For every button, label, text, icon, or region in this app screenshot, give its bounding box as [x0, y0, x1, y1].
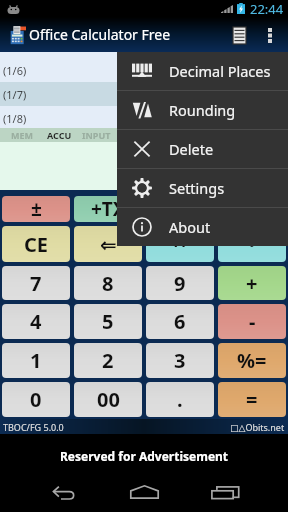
- button[interactable]: Tape: [222, 18, 256, 52]
- button[interactable]: [146, 196, 214, 222]
- staticText: Rounding: [169, 100, 236, 120]
- button[interactable]: 8: [74, 266, 142, 300]
- staticText: 0: [30, 386, 42, 413]
- button[interactable]: Decimal Places: [117, 52, 288, 90]
- button[interactable]: 3: [146, 343, 214, 378]
- staticText: 00: [97, 386, 120, 413]
- button[interactable]: +: [218, 266, 286, 300]
- button[interactable]: Home: [117, 470, 171, 512]
- staticText: ·: [249, 231, 255, 258]
- staticText: ±: [31, 196, 42, 222]
- button[interactable]: Rounding: [117, 91, 288, 129]
- button[interactable]: -: [218, 304, 286, 339]
- staticText: 8: [102, 270, 114, 297]
- staticText: RESULT: [117, 129, 150, 141]
- staticText: INPUT: [82, 129, 111, 141]
- button[interactable]: Recents: [198, 470, 252, 512]
- staticText: 6: [174, 308, 186, 335]
- staticText: =: [246, 386, 258, 413]
- staticText: 9: [174, 270, 186, 297]
- staticText: 5: [102, 308, 114, 335]
- button[interactable]: INPUT: [78, 128, 115, 142]
- button[interactable]: =: [218, 382, 286, 417]
- staticText: MEM: [11, 129, 34, 141]
- button[interactable]: %=: [218, 343, 286, 378]
- staticText: -: [249, 308, 256, 335]
- staticText: %=: [237, 347, 267, 374]
- staticText: +TX: [91, 196, 126, 222]
- button[interactable]: ⇐: [74, 226, 142, 262]
- staticText: 7: [30, 270, 42, 297]
- staticText: (1/7): [3, 87, 27, 102]
- button[interactable]: 4: [2, 304, 70, 339]
- button[interactable]: 9: [146, 266, 214, 300]
- staticText: About: [169, 217, 211, 237]
- button[interactable]: .: [146, 382, 214, 417]
- button[interactable]: ±: [2, 196, 70, 222]
- button[interactable]: 00: [74, 382, 142, 417]
- button[interactable]: ACCU: [41, 128, 78, 142]
- button[interactable]: About: [117, 208, 288, 246]
- staticText: ^: [174, 231, 186, 258]
- staticText: Office Calculator Free: [29, 25, 171, 44]
- button[interactable]: Settings: [117, 169, 288, 207]
- button[interactable]: CE: [2, 226, 70, 262]
- staticText: .: [177, 386, 183, 413]
- button[interactable]: +TX: [74, 196, 142, 222]
- staticText: Decimal Places: [169, 61, 271, 81]
- staticText: 22:44: [250, 0, 284, 17]
- button[interactable]: MEM: [4, 128, 41, 142]
- staticText: CE: [24, 231, 49, 258]
- button[interactable]: 1: [2, 343, 70, 378]
- staticText: 1: [30, 347, 42, 374]
- button[interactable]: ^: [146, 226, 214, 262]
- staticText: 4: [30, 308, 42, 335]
- button[interactable]: 6: [146, 304, 214, 339]
- staticText: (1/6): [3, 63, 27, 78]
- button[interactable]: More options: [256, 21, 284, 49]
- staticText: ⇐: [100, 233, 117, 256]
- staticText: □△Obits.net: [230, 421, 285, 433]
- staticText: +: [246, 270, 258, 297]
- button[interactable]: 5: [74, 304, 142, 339]
- staticText: (1/8): [3, 111, 27, 126]
- staticText: Reserved for Advertisement: [60, 448, 229, 464]
- button[interactable]: ·: [218, 226, 286, 262]
- button[interactable]: RESULT: [115, 128, 152, 142]
- staticText: TBOC/FG 5.0.0: [3, 421, 64, 433]
- staticText: 2: [102, 347, 114, 374]
- button[interactable]: [218, 196, 286, 222]
- staticText: Delete: [169, 139, 214, 159]
- button[interactable]: Delete: [117, 130, 288, 168]
- staticText: Settings: [169, 178, 225, 198]
- button[interactable]: 7: [2, 266, 70, 300]
- staticText: ACCU: [47, 129, 72, 141]
- button[interactable]: 2: [74, 343, 142, 378]
- button[interactable]: Back: [36, 470, 90, 512]
- staticText: 3: [174, 347, 186, 374]
- button[interactable]: 0: [2, 382, 70, 417]
